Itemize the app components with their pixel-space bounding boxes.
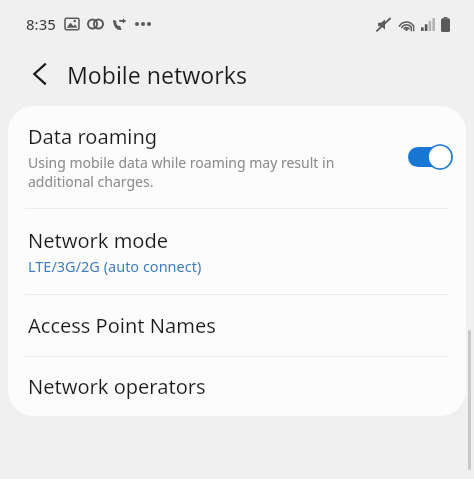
button[interactable]: Network operators xyxy=(8,357,466,416)
button[interactable]: Data roaming toggle xyxy=(408,145,452,169)
staticText: Using mobile data while roaming may resu… xyxy=(28,153,402,191)
button[interactable]: Access Point Names xyxy=(8,295,466,356)
staticText: LTE/3G/2G (auto connect) xyxy=(28,256,202,276)
button[interactable]: Back xyxy=(22,57,56,91)
staticText: Data roaming xyxy=(28,123,158,150)
staticText: Network operators xyxy=(28,373,206,400)
staticText: 8:35 xyxy=(26,14,56,34)
button[interactable]: Data roaming xyxy=(8,106,466,208)
staticText: Network mode xyxy=(28,227,169,254)
staticText: Mobile networks xyxy=(67,59,248,90)
button[interactable]: Network mode xyxy=(8,209,466,294)
staticText: Access Point Names xyxy=(28,312,216,339)
